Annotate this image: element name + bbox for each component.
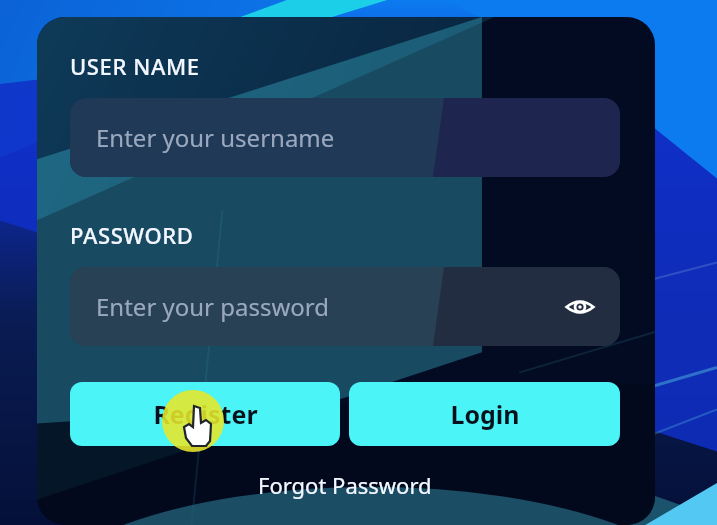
staticText: USER NAME [70,51,200,81]
button[interactable]: Show password [560,287,600,327]
staticText: Register [153,397,258,431]
staticText: Enter your username [96,121,335,154]
staticText: Enter your password [96,290,330,323]
button[interactable]: Enter your username [70,98,620,177]
staticText: Login [450,397,520,431]
button[interactable]: Forgot Password [248,467,442,503]
button[interactable]: Login [349,382,620,446]
button[interactable]: Enter your password [70,267,620,346]
button[interactable]: Register [70,382,340,446]
staticText: PASSWORD [70,220,194,250]
